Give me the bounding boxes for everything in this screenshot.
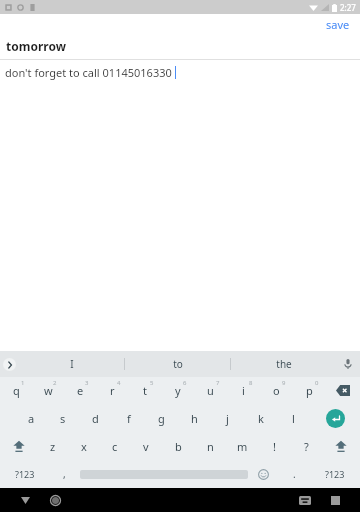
staticText: I <box>70 357 74 371</box>
staticText: 6 <box>183 379 187 387</box>
button[interactable]: . <box>279 460 310 488</box>
staticText: y <box>175 383 181 398</box>
button[interactable]: Shift <box>0 432 37 460</box>
button[interactable]: Backspace <box>326 377 360 404</box>
staticText: ?123 <box>325 468 345 480</box>
button[interactable]: the <box>231 351 336 377</box>
staticText: to <box>173 357 183 371</box>
button[interactable]: Shift <box>322 432 360 460</box>
staticText: i <box>242 383 245 398</box>
staticText: , <box>63 467 66 481</box>
staticText: 5 <box>150 379 154 387</box>
staticText: c <box>112 439 118 454</box>
staticText: f <box>127 411 131 426</box>
button[interactable]: to <box>125 351 230 377</box>
button[interactable]: save <box>316 14 360 35</box>
button[interactable]: I <box>20 351 124 377</box>
staticText: s <box>60 411 66 426</box>
button[interactable]: r <box>96 377 128 404</box>
button[interactable]: v <box>130 432 162 460</box>
staticText: h <box>191 411 198 426</box>
staticText: tomorrow <box>6 38 66 54</box>
button[interactable]: o <box>260 377 293 404</box>
button[interactable]: i <box>227 377 260 404</box>
button[interactable]: q <box>0 377 32 404</box>
staticText: . <box>293 467 296 481</box>
staticText: 0 <box>315 379 319 387</box>
button[interactable]: ? <box>290 432 322 460</box>
staticText: ? <box>304 439 309 454</box>
staticText: 8 <box>249 379 253 387</box>
button[interactable]: Space <box>80 460 248 488</box>
staticText: j <box>226 411 229 426</box>
staticText: w <box>44 383 53 398</box>
button[interactable]: y <box>161 377 194 404</box>
staticText: ?123 <box>15 468 35 480</box>
button[interactable]: ! <box>258 432 290 460</box>
button[interactable]: d <box>79 404 112 432</box>
staticText: n <box>207 439 214 454</box>
button[interactable]: Hide keyboard <box>15 490 35 510</box>
button[interactable]: w <box>32 377 64 404</box>
button[interactable]: x <box>68 432 99 460</box>
button[interactable]: Voice input <box>336 351 360 377</box>
staticText: a <box>28 411 35 426</box>
staticText: save <box>326 17 350 32</box>
staticText: 2 <box>53 379 57 387</box>
button[interactable]: k <box>244 404 277 432</box>
button[interactable]: a <box>15 404 47 432</box>
staticText: 2:27 <box>340 2 356 13</box>
staticText: 1 <box>21 379 25 387</box>
staticText: o <box>273 383 280 398</box>
button[interactable]: don't forget to call 01145016330 <box>0 60 360 80</box>
button[interactable]: Expand suggestions <box>0 355 18 373</box>
staticText: d <box>92 411 99 426</box>
button[interactable]: ?123 <box>310 460 360 488</box>
staticText: u <box>207 383 214 398</box>
staticText: t <box>143 383 147 398</box>
staticText: r <box>110 383 115 398</box>
button[interactable]: , <box>49 460 80 488</box>
button[interactable]: Home <box>45 490 65 510</box>
staticText: the <box>276 357 292 371</box>
staticText: 3 <box>85 379 89 387</box>
button[interactable]: c <box>99 432 130 460</box>
staticText: e <box>77 383 84 398</box>
button[interactable]: s <box>47 404 79 432</box>
button[interactable]: ?123 <box>0 460 49 488</box>
button[interactable]: j <box>211 404 244 432</box>
button[interactable]: z <box>37 432 68 460</box>
button[interactable]: t <box>128 377 161 404</box>
button[interactable]: m <box>226 432 258 460</box>
staticText: v <box>143 439 149 454</box>
staticText: 4 <box>117 379 121 387</box>
staticText: q <box>13 383 20 398</box>
staticText: l <box>292 411 295 426</box>
staticText: m <box>237 439 248 454</box>
staticText: ! <box>273 439 276 454</box>
button[interactable]: u <box>194 377 227 404</box>
button[interactable]: e <box>64 377 96 404</box>
staticText: g <box>158 411 165 426</box>
staticText: z <box>50 439 56 454</box>
button[interactable]: Emoji <box>248 460 279 488</box>
button[interactable]: n <box>194 432 226 460</box>
button[interactable]: tomorrow <box>0 35 360 59</box>
button[interactable]: g <box>145 404 178 432</box>
button[interactable]: Recent apps <box>325 490 345 510</box>
staticText: 9 <box>282 379 286 387</box>
button[interactable]: f <box>112 404 145 432</box>
staticText: don't forget to call 01145016330 <box>5 65 172 80</box>
staticText: x <box>81 439 87 454</box>
button[interactable]: b <box>162 432 194 460</box>
button[interactable]: h <box>178 404 211 432</box>
button[interactable]: Enter <box>310 404 360 432</box>
staticText: p <box>306 383 313 398</box>
button[interactable]: Switch keyboard <box>295 490 315 510</box>
staticText: k <box>258 411 264 426</box>
staticText: 7 <box>216 379 220 387</box>
button[interactable]: p <box>293 377 326 404</box>
staticText: b <box>175 439 182 454</box>
button[interactable]: l <box>277 404 310 432</box>
